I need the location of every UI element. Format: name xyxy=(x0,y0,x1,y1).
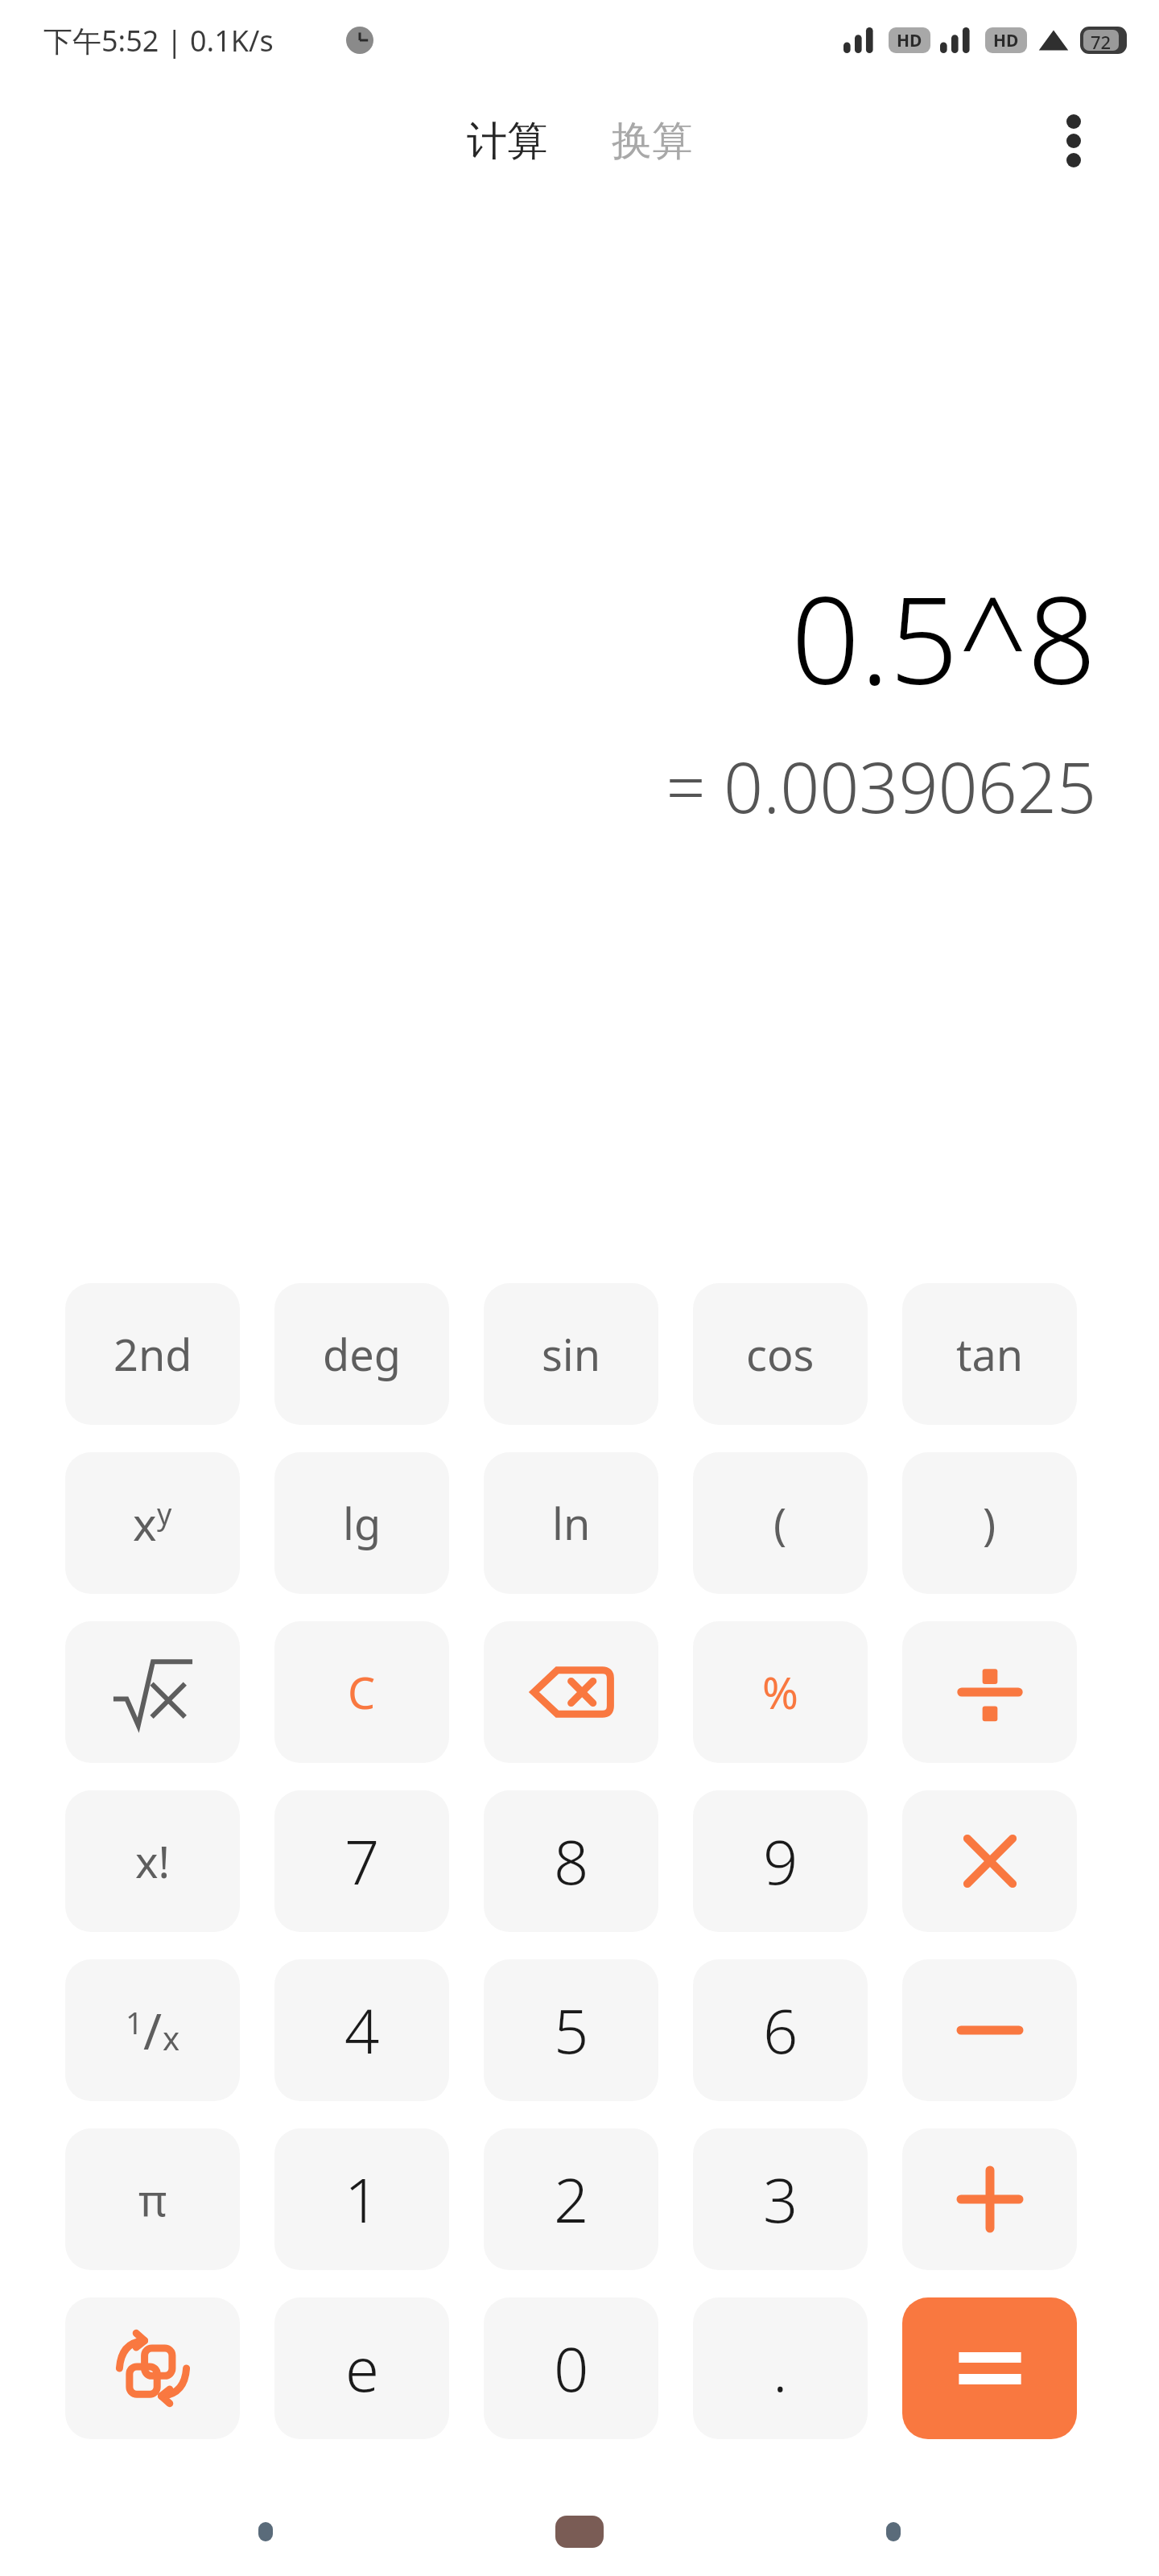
staticText: π xyxy=(138,2169,167,2229)
staticText: x xyxy=(163,2016,180,2059)
button[interactable]: 换算 xyxy=(597,108,707,175)
button[interactable]: 5 xyxy=(484,1959,658,2101)
staticText: tan xyxy=(956,1324,1024,1384)
staticText: deg xyxy=(323,1324,401,1384)
button[interactable]: deg xyxy=(274,1283,449,1425)
staticText: 8 xyxy=(554,1819,589,1903)
button[interactable]: tan xyxy=(902,1283,1077,1425)
button[interactable]: 3 xyxy=(693,2128,868,2270)
staticText: 下午5:52 | 0.1K/s xyxy=(43,21,274,60)
staticText: x xyxy=(133,1492,157,1554)
staticText: sin xyxy=(542,1324,601,1384)
staticText: cos xyxy=(746,1324,815,1384)
button[interactable]: ln xyxy=(484,1452,658,1594)
button[interactable]: 1 xyxy=(274,2128,449,2270)
staticText: HD xyxy=(993,29,1019,52)
staticText: 2 xyxy=(554,2157,589,2241)
button[interactable]: lg xyxy=(274,1452,449,1594)
button[interactable]: . xyxy=(693,2297,868,2439)
button[interactable]: 计算 xyxy=(452,108,562,175)
button[interactable]: 4 xyxy=(274,1959,449,2101)
button[interactable]: 7 xyxy=(274,1790,449,1932)
staticText: ( xyxy=(773,1493,787,1553)
staticText: 1 xyxy=(126,2001,143,2043)
staticText: C xyxy=(348,1662,376,1722)
button[interactable]: Minus xyxy=(902,1959,1077,2101)
staticText: 换算 xyxy=(612,116,692,167)
staticText: 0 xyxy=(554,2326,589,2410)
button[interactable]: 6 xyxy=(693,1959,868,2101)
staticText: % xyxy=(762,1662,798,1722)
staticText: 72 xyxy=(1091,30,1112,51)
button[interactable]: 9 xyxy=(693,1790,868,1932)
staticText: 5 xyxy=(554,1988,589,2072)
staticText: HD xyxy=(897,29,922,52)
staticText: 1 xyxy=(344,2157,380,2241)
staticText: 3 xyxy=(763,2157,798,2241)
button[interactable]: Multiply xyxy=(902,1790,1077,1932)
staticText: lg xyxy=(343,1493,382,1553)
staticText: 2nd xyxy=(113,1324,192,1384)
button[interactable]: Recents xyxy=(857,2504,930,2560)
staticText: 计算 xyxy=(467,116,547,167)
staticText: 0.5^8 xyxy=(790,555,1096,720)
button[interactable]: Equals xyxy=(902,2297,1077,2439)
staticText: . xyxy=(773,2326,788,2410)
button[interactable]: Convert xyxy=(65,2297,240,2439)
button[interactable]: Home xyxy=(531,2504,628,2560)
staticText: x! xyxy=(135,1831,171,1891)
button[interactable]: More options xyxy=(1035,102,1112,180)
button[interactable]: ) xyxy=(902,1452,1077,1594)
staticText: / xyxy=(143,1996,163,2064)
staticText: y xyxy=(157,1494,172,1534)
staticText: = 0.00390625 xyxy=(666,739,1096,833)
button[interactable]: cos xyxy=(693,1283,868,1425)
button[interactable]: % xyxy=(693,1621,868,1763)
staticText: ) xyxy=(983,1493,996,1553)
button[interactable]: 8 xyxy=(484,1790,658,1932)
button[interactable]: C xyxy=(274,1621,449,1763)
button[interactable]: π xyxy=(65,2128,240,2270)
button[interactable]: Square root xyxy=(65,1621,240,1763)
staticText: ln xyxy=(552,1493,591,1553)
button[interactable]: Plus xyxy=(902,2128,1077,2270)
staticText: 6 xyxy=(763,1988,798,2072)
staticText: 4 xyxy=(344,1988,380,2072)
staticText: 9 xyxy=(763,1819,798,1903)
button[interactable]: One over x xyxy=(65,1959,240,2101)
staticText: 7 xyxy=(344,1819,380,1903)
button[interactable]: x to the power of y xyxy=(65,1452,240,1594)
button[interactable]: 0 xyxy=(484,2297,658,2439)
staticText: e xyxy=(345,2326,379,2410)
button[interactable]: 2 xyxy=(484,2128,658,2270)
button[interactable]: e xyxy=(274,2297,449,2439)
button[interactable]: Divide xyxy=(902,1621,1077,1763)
button[interactable]: sin xyxy=(484,1283,658,1425)
button[interactable]: 2nd xyxy=(65,1283,240,1425)
button[interactable]: x! xyxy=(65,1790,240,1932)
button[interactable]: Backspace xyxy=(484,1621,658,1763)
button[interactable]: ( xyxy=(693,1452,868,1594)
button[interactable]: Back xyxy=(229,2504,302,2560)
